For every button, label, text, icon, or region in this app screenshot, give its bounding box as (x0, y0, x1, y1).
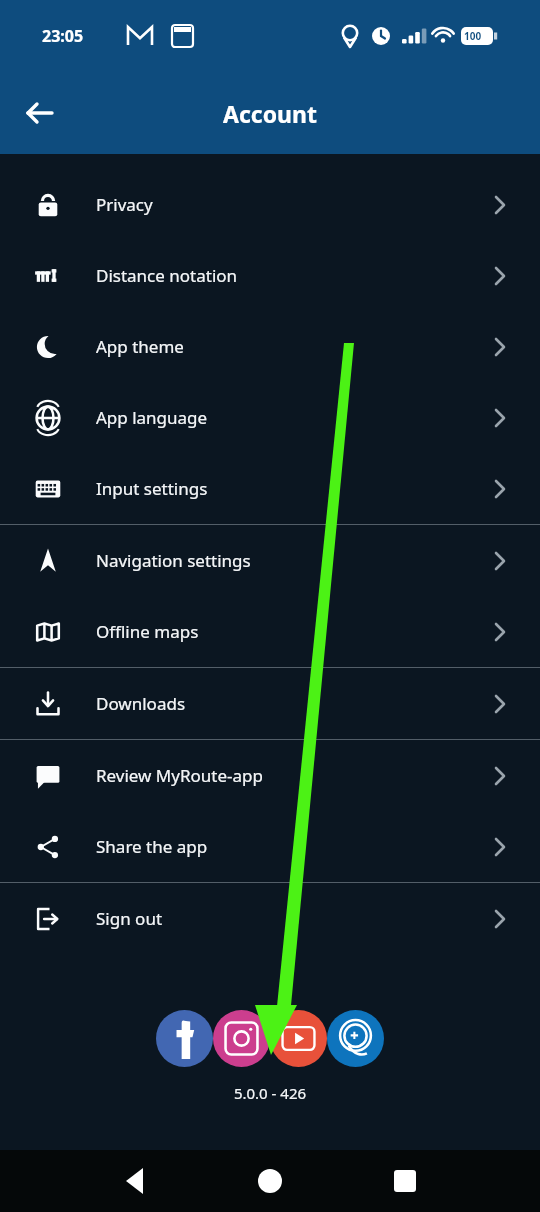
staticText: Privacy (96, 193, 153, 216)
button[interactable]: Distance notation (0, 240, 540, 311)
staticText: Downloads (96, 692, 186, 715)
staticText: Distance notation (96, 264, 238, 287)
button[interactable]: YouTube (270, 1010, 327, 1067)
button[interactable]: App language (0, 382, 540, 453)
button[interactable]: Downloads (0, 668, 540, 739)
staticText: 100 (464, 29, 482, 43)
button[interactable]: Instagram (213, 1010, 270, 1067)
button[interactable]: Review MyRoute-app (0, 740, 540, 811)
staticText: Review MyRoute-app (96, 764, 263, 787)
button[interactable]: Offline maps (0, 596, 540, 667)
staticText: Account (223, 98, 317, 129)
button[interactable]: Share the app (0, 811, 540, 882)
staticText: Navigation settings (96, 549, 251, 572)
staticText: Share the app (96, 835, 208, 858)
button[interactable]: App theme (0, 311, 540, 382)
staticText: 23:05 (42, 25, 84, 47)
staticText: App language (96, 406, 208, 429)
staticText: Sign out (96, 907, 163, 930)
staticText: 5.0.0 - 426 (0, 1083, 540, 1103)
staticText: App theme (96, 335, 184, 358)
button[interactable]: Facebook (156, 1010, 213, 1067)
button[interactable]: Privacy (0, 169, 540, 240)
button[interactable]: Input settings (0, 453, 540, 524)
staticText: Offline maps (96, 620, 199, 643)
button[interactable]: Sign out (0, 883, 540, 954)
button[interactable]: Navigation settings (0, 525, 540, 596)
staticText: Input settings (96, 477, 208, 500)
button[interactable]: MyRoute-app (327, 1010, 384, 1067)
button[interactable]: Back (14, 87, 66, 139)
